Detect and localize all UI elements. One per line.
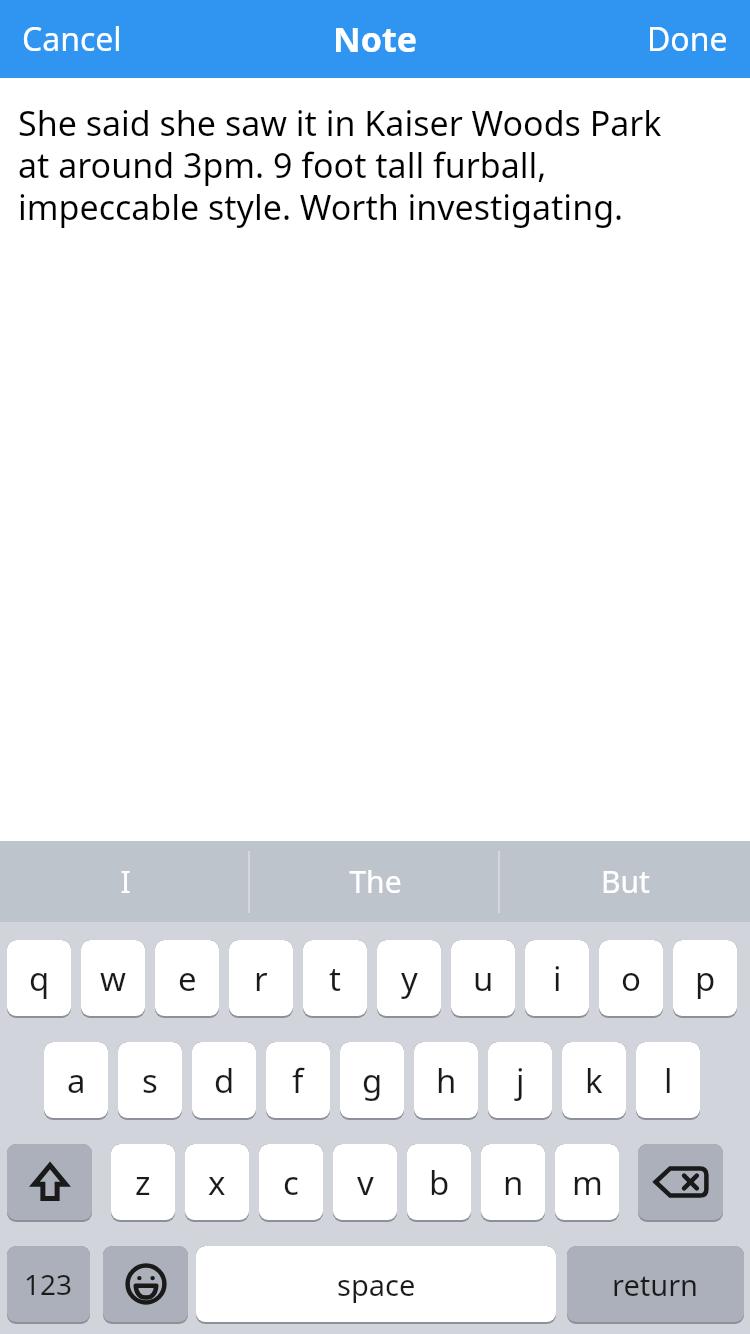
button[interactable]: g <box>340 1042 404 1118</box>
button[interactable]: But <box>500 841 750 922</box>
button[interactable]: l <box>636 1042 700 1118</box>
staticText: But <box>601 861 650 902</box>
staticText: c <box>283 1160 299 1205</box>
button[interactable]: space <box>196 1246 556 1322</box>
button[interactable]: I <box>0 841 250 922</box>
staticText: Note <box>333 16 417 62</box>
staticText: 123 <box>24 1265 73 1303</box>
button[interactable]: o <box>599 940 663 1016</box>
staticText: w <box>100 956 126 1001</box>
button[interactable]: z <box>111 1144 175 1220</box>
button[interactable]: c <box>259 1144 323 1220</box>
button[interactable]: r <box>229 940 293 1016</box>
staticText: t <box>329 956 341 1001</box>
staticText: Cancel <box>22 17 122 61</box>
staticText: v <box>357 1160 374 1205</box>
button[interactable]: f <box>266 1042 330 1118</box>
button[interactable]: q <box>7 940 71 1016</box>
staticText: Done <box>647 17 728 61</box>
button[interactable]: s <box>118 1042 182 1118</box>
staticText: r <box>254 956 268 1001</box>
button[interactable]: k <box>562 1042 626 1118</box>
button[interactable]: t <box>303 940 367 1016</box>
staticText: space <box>337 1265 416 1304</box>
staticText: u <box>473 956 494 1001</box>
button[interactable]: v <box>333 1144 397 1220</box>
button[interactable]: h <box>414 1042 478 1118</box>
button[interactable]: b <box>407 1144 471 1220</box>
button[interactable]: j <box>488 1042 552 1118</box>
button[interactable]: Backspace <box>638 1144 723 1220</box>
button[interactable]: Shift <box>7 1144 92 1220</box>
staticText: The <box>349 861 402 902</box>
staticText: b <box>429 1160 450 1205</box>
button[interactable]: n <box>481 1144 545 1220</box>
button[interactable]: m <box>555 1144 619 1220</box>
staticText: x <box>208 1160 226 1205</box>
button[interactable]: a <box>44 1042 108 1118</box>
button[interactable]: She said she saw it in Kaiser Woods Park… <box>0 78 750 841</box>
staticText: d <box>214 1058 235 1103</box>
staticText: z <box>135 1160 151 1205</box>
button[interactable]: w <box>81 940 145 1016</box>
staticText: y <box>401 956 418 1001</box>
button[interactable]: 123 <box>7 1246 90 1322</box>
staticText: g <box>362 1058 383 1103</box>
button[interactable]: e <box>155 940 219 1016</box>
staticText: q <box>29 956 50 1001</box>
staticText: k <box>585 1058 603 1103</box>
staticText: h <box>436 1058 457 1103</box>
button[interactable]: p <box>673 940 737 1016</box>
staticText: return <box>612 1265 699 1304</box>
button[interactable]: d <box>192 1042 256 1118</box>
staticText: a <box>67 1058 86 1103</box>
staticText: s <box>142 1058 158 1103</box>
staticText: She said she saw it in Kaiser Woods Park… <box>18 100 692 230</box>
staticText: i <box>553 956 562 1001</box>
button[interactable]: i <box>525 940 589 1016</box>
staticText: l <box>664 1058 673 1103</box>
staticText: o <box>621 956 641 1001</box>
button[interactable]: u <box>451 940 515 1016</box>
staticText: p <box>695 956 716 1001</box>
button[interactable]: return <box>567 1246 744 1322</box>
button[interactable]: Done <box>633 9 742 69</box>
staticText: m <box>572 1160 603 1205</box>
staticText: I <box>120 861 131 902</box>
button[interactable]: y <box>377 940 441 1016</box>
button[interactable]: The <box>250 841 500 922</box>
staticText: n <box>503 1160 524 1205</box>
button[interactable]: Cancel <box>8 9 136 69</box>
staticText: f <box>292 1058 304 1103</box>
button[interactable]: Emoji keyboard <box>103 1246 188 1322</box>
button[interactable]: x <box>185 1144 249 1220</box>
staticText: e <box>178 956 197 1001</box>
staticText: j <box>516 1058 525 1103</box>
